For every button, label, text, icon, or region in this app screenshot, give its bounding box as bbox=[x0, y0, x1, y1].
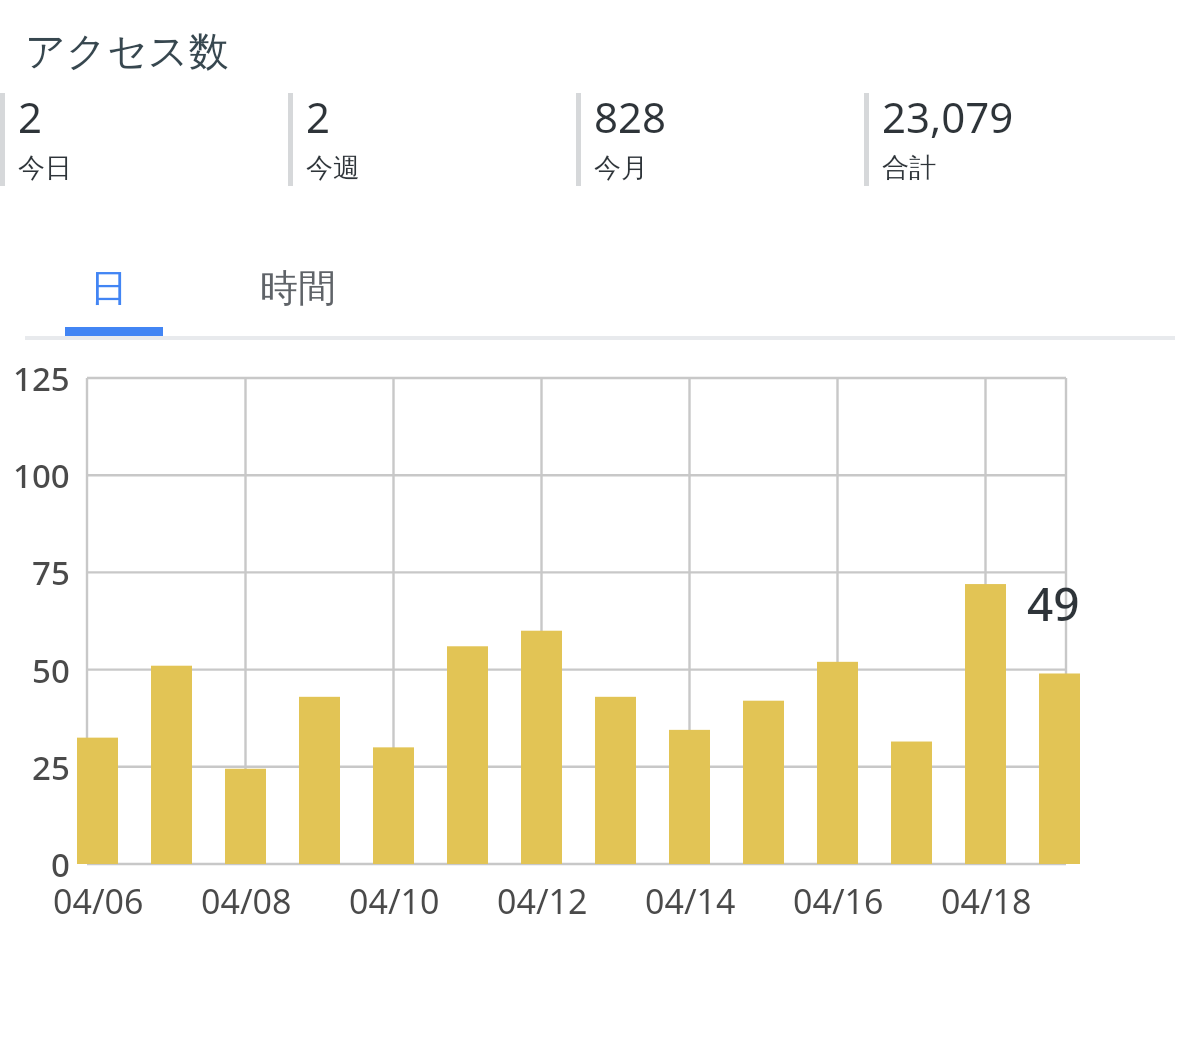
button[interactable]: 23,079 bbox=[864, 88, 1152, 186]
staticText: 04/14 bbox=[645, 878, 736, 924]
button[interactable]: 日 bbox=[25, 248, 193, 340]
staticText: 25 bbox=[32, 745, 70, 790]
staticText: 828 bbox=[594, 88, 667, 145]
staticText: 時間 bbox=[260, 264, 336, 312]
staticText: 49 bbox=[1027, 572, 1080, 635]
staticText: 04/12 bbox=[497, 878, 588, 924]
button[interactable]: 2 bbox=[288, 88, 576, 186]
staticText: 合計 bbox=[882, 151, 936, 185]
staticText: 2 bbox=[18, 88, 43, 145]
button[interactable]: 2 bbox=[0, 88, 288, 186]
button[interactable]: 828 bbox=[576, 88, 864, 186]
staticText: 日 bbox=[90, 264, 128, 312]
staticText: 今月 bbox=[594, 151, 648, 185]
staticText: 0 bbox=[51, 842, 70, 887]
staticText: 04/16 bbox=[793, 878, 884, 924]
button[interactable]: 時間 bbox=[193, 248, 403, 340]
staticText: 2 bbox=[306, 88, 331, 145]
staticText: 今日 bbox=[18, 151, 72, 185]
staticText: 今週 bbox=[306, 151, 360, 185]
staticText: 04/10 bbox=[349, 878, 440, 924]
staticText: 125 bbox=[13, 356, 70, 401]
staticText: 100 bbox=[13, 453, 70, 498]
staticText: 04/06 bbox=[53, 878, 144, 924]
staticText: 04/08 bbox=[201, 878, 292, 924]
staticText: 75 bbox=[32, 550, 70, 595]
staticText: 04/18 bbox=[941, 878, 1032, 924]
staticText: 50 bbox=[32, 648, 70, 693]
staticText: 23,079 bbox=[882, 88, 1014, 145]
staticText: アクセス数 bbox=[25, 26, 229, 76]
